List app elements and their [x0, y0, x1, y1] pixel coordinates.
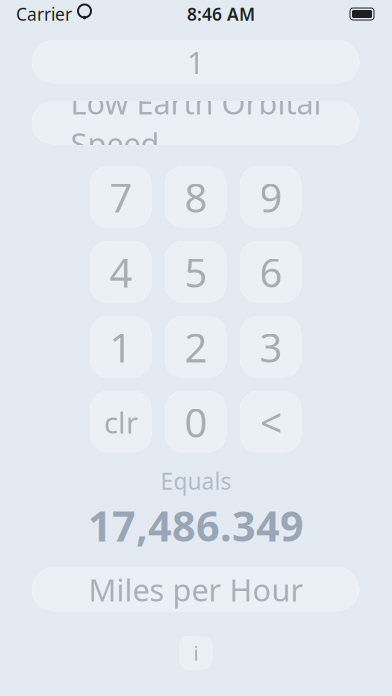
staticText: Low Earth Orbital Speed: [70, 82, 321, 164]
button[interactable]: Miles per Hour: [32, 567, 360, 612]
button[interactable]: 7: [90, 166, 152, 228]
staticText: 4: [109, 245, 132, 298]
button[interactable]: 6: [240, 241, 302, 303]
button[interactable]: Info: [179, 636, 213, 670]
button[interactable]: 0: [165, 391, 227, 453]
staticText: 7: [109, 170, 132, 223]
staticText: 1: [187, 42, 205, 82]
staticText: 3: [259, 320, 282, 373]
button[interactable]: 2: [165, 316, 227, 378]
button[interactable]: 3: [240, 316, 302, 378]
button[interactable]: <: [240, 391, 302, 453]
staticText: 6: [259, 245, 282, 298]
button[interactable]: 8: [165, 166, 227, 228]
staticText: 5: [184, 245, 207, 298]
staticText: 2: [184, 320, 207, 373]
staticText: 0: [184, 395, 207, 448]
button[interactable]: clr: [90, 391, 152, 453]
staticText: Carrier: [16, 2, 72, 25]
staticText: 9: [259, 170, 282, 223]
staticText: 17,486.349: [88, 498, 304, 553]
staticText: Miles per Hour: [88, 569, 303, 610]
staticText: 8: [184, 170, 207, 223]
button[interactable]: 5: [165, 241, 227, 303]
staticText: <: [259, 395, 282, 448]
button[interactable]: Low Earth Orbital Speed: [32, 101, 360, 145]
button[interactable]: i: [179, 636, 213, 670]
staticText: clr: [104, 402, 138, 441]
staticText: 1: [109, 320, 132, 373]
staticText: i: [193, 640, 198, 666]
button[interactable]: 1: [90, 316, 152, 378]
button[interactable]: 4: [90, 241, 152, 303]
button[interactable]: 9: [240, 166, 302, 228]
staticText: Equals: [160, 466, 231, 496]
button[interactable]: 1: [32, 40, 360, 84]
staticText: 8:46 AM: [187, 2, 255, 25]
